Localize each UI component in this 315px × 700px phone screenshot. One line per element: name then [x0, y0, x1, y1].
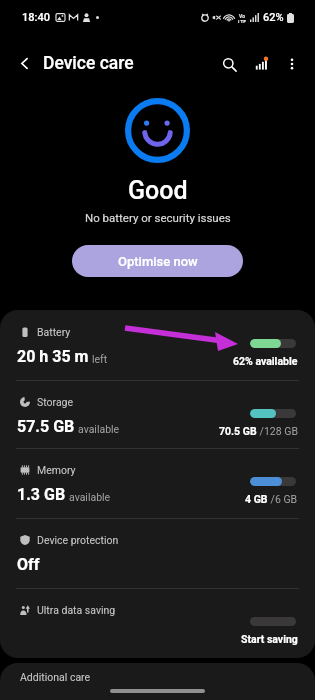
button[interactable]: Memory — [0, 448, 315, 518]
staticText: Vo — [239, 13, 245, 19]
staticText: Storage — [37, 396, 74, 408]
staticText: 62% available — [233, 355, 298, 367]
staticText: Additional care — [20, 671, 91, 683]
button[interactable] — [0, 326, 315, 380]
staticText: Battery — [37, 326, 71, 338]
button[interactable]: Optimise now — [72, 245, 243, 277]
staticText: 1.3 GB — [17, 485, 66, 504]
staticText: Device protection — [37, 534, 119, 546]
staticText: /128 GB — [257, 425, 298, 437]
staticText: Start saving — [241, 633, 298, 645]
staticText: 70.5 GB — [219, 425, 257, 437]
staticText: 18:40 — [22, 11, 50, 24]
button[interactable]: Additional care — [0, 663, 315, 700]
staticText: Ultra data saving — [37, 604, 116, 616]
staticText: LTE — [238, 19, 247, 23]
staticText: available — [78, 423, 120, 435]
staticText: 4 GB — [245, 493, 268, 505]
staticText: left — [92, 353, 108, 365]
staticText: /6 GB — [268, 493, 298, 505]
button[interactable]: Ultra data saving — [0, 588, 315, 658]
staticText: 20 h 35 m — [17, 347, 89, 366]
button[interactable]: Navigate up — [11, 50, 38, 77]
button[interactable]: Battery — [0, 310, 315, 380]
staticText: Device care — [43, 53, 134, 74]
button[interactable]: Search — [214, 49, 244, 79]
staticText: available — [69, 491, 111, 503]
button[interactable]: Usage statistics — [246, 49, 276, 79]
button[interactable]: Device protection — [0, 518, 315, 588]
button[interactable]: Storage — [0, 380, 315, 450]
staticText: Optimise now — [118, 254, 198, 269]
staticText: Memory — [37, 464, 76, 476]
staticText: Good — [128, 176, 188, 205]
staticText: 62% — [263, 11, 284, 24]
button[interactable]: More options — [277, 49, 307, 79]
staticText: 57.5 GB — [17, 417, 75, 436]
staticText: Off — [17, 555, 40, 574]
staticText: No battery or security issues — [85, 211, 231, 224]
